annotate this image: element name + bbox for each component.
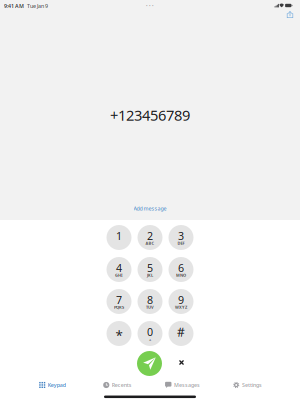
button[interactable]: 5 <box>135 185 165 215</box>
staticText: +123456789 <box>110 105 190 125</box>
staticText: 1 <box>116 229 122 243</box>
staticText: Messages <box>174 381 200 389</box>
button[interactable]: 4 <box>135 185 165 215</box>
staticText: TUV <box>146 304 154 310</box>
button[interactable]: Delete <box>142 192 158 208</box>
staticText: 9 <box>178 293 184 307</box>
staticText: DEF <box>177 240 184 246</box>
staticText: 0 <box>147 325 153 339</box>
staticText: 4 <box>116 261 122 275</box>
button[interactable]: 9 <box>135 185 165 215</box>
button[interactable]: 2 <box>135 185 165 215</box>
staticText: Add message <box>133 205 166 212</box>
staticText: # <box>177 324 185 340</box>
staticText: Keypad <box>48 381 66 389</box>
button[interactable]: # <box>135 185 165 215</box>
staticText: 7 <box>116 293 122 307</box>
staticText: • • • <box>146 3 154 8</box>
button[interactable]: 1 <box>135 185 165 215</box>
button[interactable]: 8 <box>135 185 165 215</box>
button[interactable]: 6 <box>135 185 165 215</box>
staticText: Settings <box>242 381 262 389</box>
staticText: 2 <box>147 229 153 243</box>
staticText: GHI <box>115 272 123 278</box>
staticText: 3 <box>178 229 184 243</box>
staticText: 9:41 AM <box>4 2 24 10</box>
button[interactable]: 3 <box>135 185 165 215</box>
staticText: JKL <box>147 272 153 278</box>
staticText: 5 <box>147 261 153 275</box>
button[interactable]: 7 <box>135 185 165 215</box>
staticText: ABC <box>145 240 154 246</box>
staticText: 8 <box>147 293 153 307</box>
staticText: Tue Jan 9 <box>27 2 48 10</box>
staticText: PQRS <box>114 304 124 310</box>
staticText: + <box>149 336 151 342</box>
button[interactable]: Share <box>142 192 158 208</box>
staticText: WXYZ <box>175 304 187 310</box>
button[interactable]: 0 <box>135 185 165 215</box>
staticText: * <box>115 326 122 344</box>
button[interactable]: Call <box>136 186 164 214</box>
staticText: MNO <box>176 272 186 278</box>
staticText: 6 <box>178 261 184 275</box>
button[interactable]: * <box>135 185 165 215</box>
staticText: Recents <box>112 381 132 389</box>
